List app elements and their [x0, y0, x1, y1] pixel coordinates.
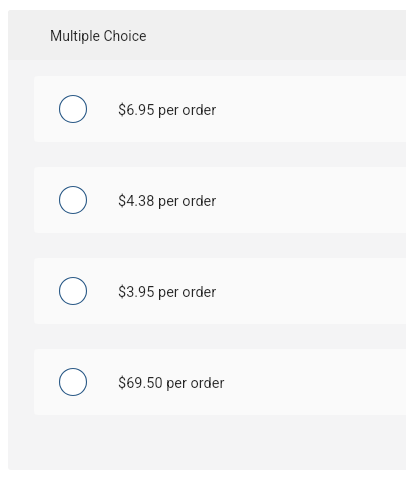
staticText: Multiple Choice [50, 28, 147, 44]
button[interactable]: Select $6.95 per order [34, 76, 406, 142]
other: Select $3.95 per order [59, 277, 87, 305]
button[interactable]: Select $69.50 per order [34, 349, 406, 415]
other: Select $6.95 per order [59, 95, 87, 123]
button[interactable]: Select $3.95 per order [34, 258, 406, 324]
other: Select $69.50 per order [59, 368, 87, 396]
staticText: $4.38 per order [118, 193, 217, 210]
staticText: $69.50 per order [118, 375, 225, 392]
staticText: $6.95 per order [118, 102, 217, 119]
other: Select $4.38 per order [59, 186, 87, 214]
staticText: $3.95 per order [118, 284, 217, 301]
button[interactable]: Select $4.38 per order [34, 167, 406, 233]
